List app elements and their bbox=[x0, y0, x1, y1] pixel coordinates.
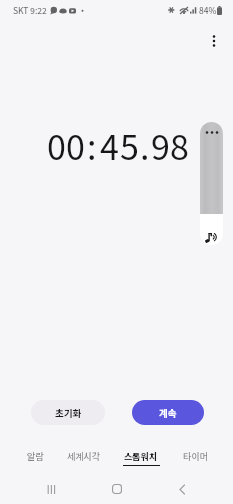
staticText: 초기화 bbox=[55, 406, 82, 420]
staticText: 8 bbox=[170, 121, 189, 170]
staticText: 알람 bbox=[27, 450, 44, 463]
staticText: : bbox=[87, 121, 97, 170]
button[interactable]: 세계시각 bbox=[59, 446, 109, 470]
button[interactable]: 알람 bbox=[10, 446, 60, 470]
staticText: 84% bbox=[199, 4, 217, 16]
staticText: 4 bbox=[100, 121, 119, 170]
staticText: 0 bbox=[66, 121, 85, 170]
staticText: SKT 9:22 bbox=[13, 4, 47, 16]
button[interactable]: 타이머 bbox=[170, 446, 220, 470]
button[interactable]: 스톱워치 bbox=[116, 446, 166, 470]
staticText: 세계시각 bbox=[67, 450, 101, 463]
button[interactable]: Back bbox=[167, 475, 197, 503]
staticText: 스톱워치 bbox=[124, 450, 158, 463]
button[interactable]: Home bbox=[102, 475, 132, 503]
staticText: . bbox=[140, 121, 150, 170]
staticText: 0 bbox=[47, 121, 66, 170]
staticText: 9 bbox=[151, 121, 170, 170]
button[interactable]: Recents bbox=[36, 475, 66, 503]
staticText: 계속 bbox=[159, 406, 177, 420]
button[interactable]: More options bbox=[202, 29, 226, 53]
button[interactable]: Edge panel music controls bbox=[200, 122, 223, 245]
staticText: 타이머 bbox=[183, 450, 208, 463]
button[interactable]: 계속 bbox=[132, 400, 204, 425]
staticText: 5 bbox=[120, 121, 139, 170]
button[interactable]: 초기화 bbox=[31, 400, 105, 425]
